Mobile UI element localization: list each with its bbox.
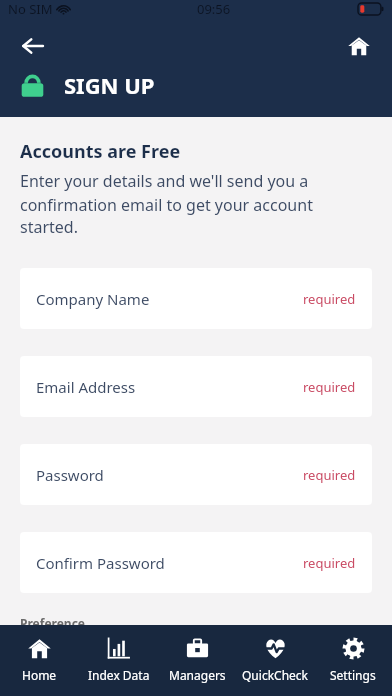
button[interactable]: EUR <box>160 641 222 671</box>
staticText: required <box>303 466 356 484</box>
staticText: CAD <box>316 646 347 666</box>
button[interactable]: Back <box>16 29 50 63</box>
staticText: Enter your details and we'll send you a <box>20 170 309 192</box>
staticText: GBP <box>36 646 67 666</box>
button[interactable]: Company Name <box>20 268 372 329</box>
button[interactable]: Managers <box>158 625 236 696</box>
staticText: EUR <box>176 646 206 666</box>
staticText: required <box>303 290 356 308</box>
staticText: confirmation email to get your account s… <box>20 194 372 238</box>
button[interactable]: Password <box>20 444 372 505</box>
staticText: Preference <box>20 615 85 631</box>
button[interactable]: Settings <box>314 625 392 696</box>
staticText: No SIM <box>8 0 53 18</box>
staticText: 09:56 <box>197 0 231 18</box>
button[interactable]: USD <box>90 641 152 671</box>
button[interactable]: QuickCheck <box>236 625 314 696</box>
staticText: Home <box>22 667 57 683</box>
staticText: Accounts are Free <box>20 139 181 164</box>
staticText: required <box>303 378 356 396</box>
button[interactable]: CAD <box>300 641 362 671</box>
staticText: USD <box>106 646 137 666</box>
button[interactable]: Confirm Password <box>20 532 372 593</box>
staticText: required <box>303 554 356 572</box>
button[interactable]: Home <box>0 625 79 696</box>
button[interactable]: Index Data <box>79 625 158 696</box>
staticText: Managers <box>169 667 226 683</box>
staticText: Settings <box>330 667 376 683</box>
button[interactable]: CHF <box>230 641 292 671</box>
staticText: Company Name <box>36 289 150 309</box>
button[interactable]: Home <box>342 29 376 63</box>
staticText: SIGN UP <box>64 70 155 100</box>
button[interactable]: Email Address <box>20 356 372 417</box>
button[interactable]: GBP <box>20 641 82 671</box>
staticText: CHF <box>246 646 276 666</box>
staticText: Email Address <box>36 377 136 397</box>
staticText: Password <box>36 465 104 485</box>
staticText: Index Data <box>88 667 150 683</box>
staticText: Confirm Password <box>36 553 165 573</box>
staticText: QuickCheck <box>242 667 308 683</box>
